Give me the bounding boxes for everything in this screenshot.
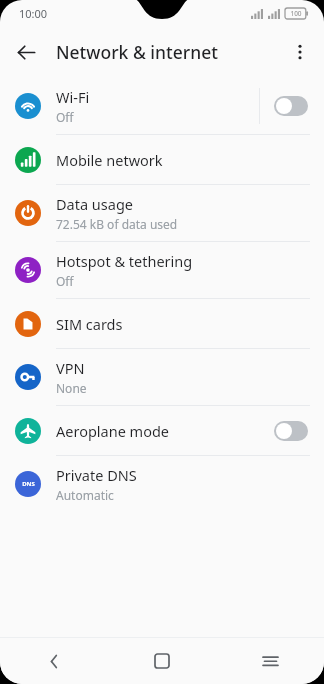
staticText: 72.54 kB of data used: [56, 216, 178, 232]
button[interactable]: Recent apps: [216, 638, 324, 684]
button[interactable]: SIM cards: [0, 299, 324, 349]
staticText: DNS: [22, 480, 35, 488]
staticText: SIM cards: [56, 314, 123, 334]
button[interactable]: Mobile network: [0, 135, 324, 185]
staticText: Aeroplane mode: [56, 421, 170, 441]
button[interactable]: Wi-Fi: [0, 78, 324, 135]
staticText: Network & internet: [56, 40, 218, 64]
button[interactable]: Aeroplane mode: [0, 406, 324, 456]
button[interactable]: VPN: [0, 349, 324, 406]
staticText: Off: [56, 273, 74, 289]
button[interactable]: Data usage: [0, 185, 324, 242]
button[interactable]: Aeroplane mode toggle: [274, 421, 308, 441]
staticText: Wi-Fi: [56, 87, 90, 107]
staticText: Automatic: [56, 487, 114, 503]
staticText: Hotspot & tethering: [56, 251, 193, 271]
staticText: Mobile network: [56, 150, 163, 170]
staticText: VPN: [56, 358, 85, 378]
button[interactable]: Back: [6, 32, 46, 72]
button[interactable]: Home: [108, 638, 216, 684]
button[interactable]: Wi-Fi toggle: [274, 96, 308, 116]
button[interactable]: Hotspot & tethering: [0, 242, 324, 299]
staticText: 10:00: [19, 6, 48, 21]
button[interactable]: DNS: [0, 456, 324, 512]
button[interactable]: Back: [0, 638, 108, 684]
staticText: Data usage: [56, 194, 133, 214]
staticText: Off: [56, 109, 74, 125]
staticText: Private DNS: [56, 465, 137, 485]
button[interactable]: More options: [280, 32, 320, 72]
staticText: None: [56, 380, 87, 396]
staticText: 100: [290, 9, 302, 18]
